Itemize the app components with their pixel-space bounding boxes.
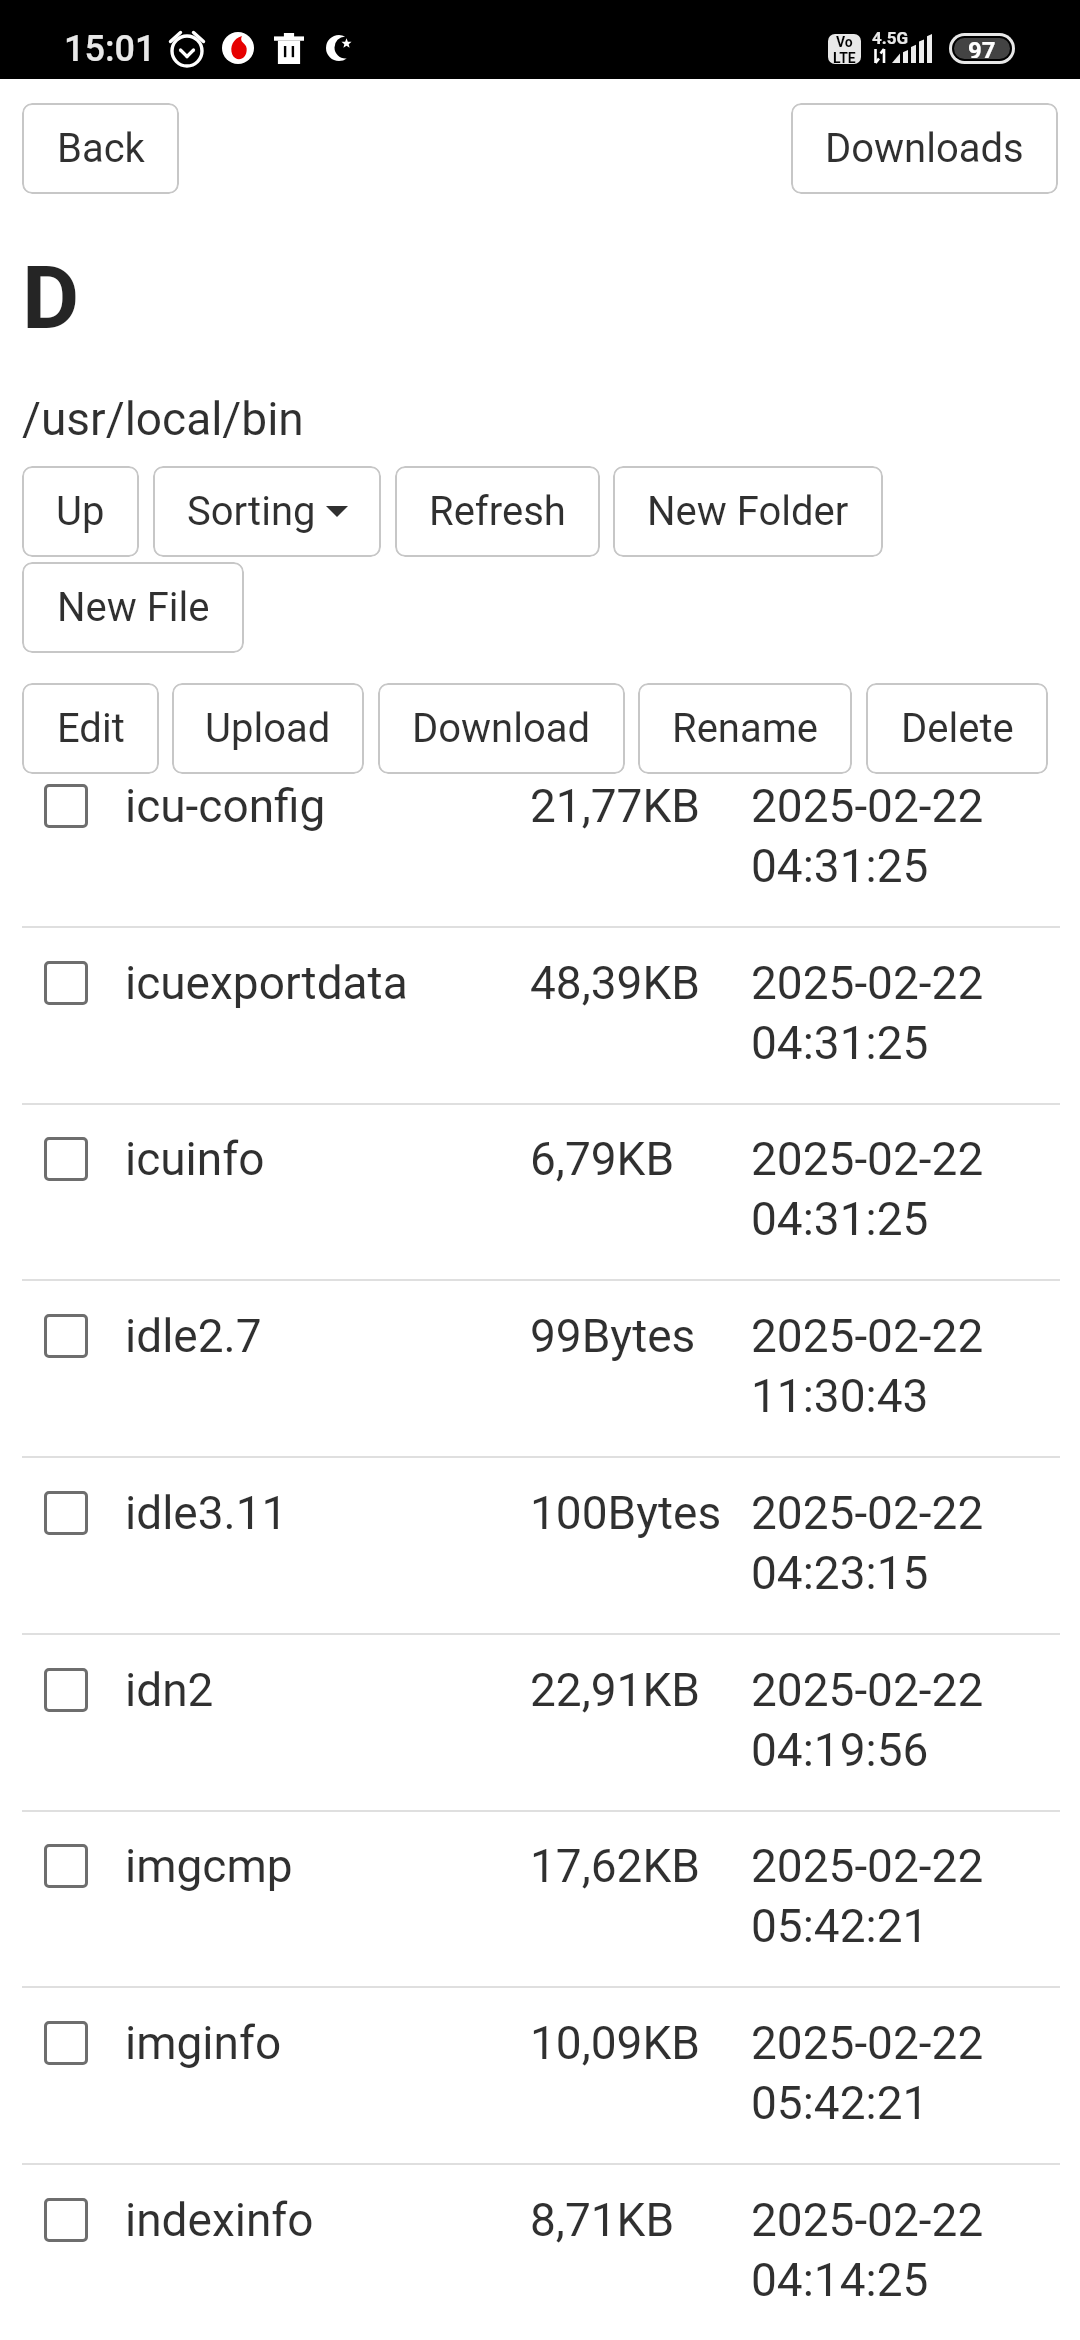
staticText: Download xyxy=(412,705,591,752)
staticText: 2025-02-22 04:31:25 xyxy=(751,779,984,893)
staticText: 21,77KB xyxy=(530,779,700,833)
staticText: New File xyxy=(57,584,210,631)
staticText: 48,39KB xyxy=(530,956,700,1010)
button[interactable]: New Folder xyxy=(613,466,883,557)
button[interactable]: Select idn2 xyxy=(44,1668,88,1712)
button[interactable]: Delete xyxy=(866,683,1048,774)
staticText: 99Bytes xyxy=(530,1309,696,1363)
button[interactable]: Select indexinfo xyxy=(0,2193,1080,2340)
button[interactable]: Back xyxy=(22,103,179,194)
staticText: 2025-02-22 04:31:25 xyxy=(751,1132,984,1246)
button[interactable]: Select icu-config xyxy=(44,784,88,828)
staticText: /usr/local/bin xyxy=(22,392,304,446)
staticText: 15:01 xyxy=(64,28,156,70)
button[interactable]: Select idle2.7 xyxy=(0,1309,1080,1486)
button[interactable]: Select icuexportdata xyxy=(0,956,1080,1133)
staticText: Downloads xyxy=(825,125,1024,172)
staticText: icuexportdata xyxy=(125,956,408,1010)
staticText: 2025-02-22 05:42:21 xyxy=(751,2016,984,2130)
staticText: 8,71KB xyxy=(530,2193,675,2247)
staticText: Rename xyxy=(672,705,818,752)
button[interactable]: Select icuinfo xyxy=(44,1137,88,1181)
staticText: 2025-02-22 04:31:25 xyxy=(751,956,984,1070)
staticText: Back xyxy=(57,125,145,172)
staticText: Upload xyxy=(205,705,331,752)
button[interactable]: Select icuinfo xyxy=(0,1132,1080,1309)
staticText: Refresh xyxy=(429,488,566,535)
button[interactable]: Select idle3.11 xyxy=(0,1486,1080,1663)
staticText: LTE xyxy=(833,50,856,64)
staticText: Edit xyxy=(57,705,125,752)
staticText: 97 xyxy=(968,38,996,58)
staticText: idn2 xyxy=(125,1663,214,1717)
staticText: Delete xyxy=(901,705,1014,752)
staticText: imgcmp xyxy=(125,1839,293,1893)
button[interactable]: Select icuexportdata xyxy=(44,961,88,1005)
staticText: 17,62KB xyxy=(530,1839,700,1893)
staticText: 2025-02-22 04:23:15 xyxy=(751,1486,984,1600)
staticText: imginfo xyxy=(125,2016,282,2070)
button[interactable]: Rename xyxy=(638,683,852,774)
staticText: 100Bytes xyxy=(530,1486,722,1540)
button[interactable]: Select imginfo xyxy=(44,2021,88,2065)
staticText: icuinfo xyxy=(125,1132,265,1186)
staticText: 6,79KB xyxy=(530,1132,675,1186)
button[interactable]: Select icu-config xyxy=(0,779,1080,956)
button[interactable]: Select idle3.11 xyxy=(44,1491,88,1535)
button[interactable]: Select idle2.7 xyxy=(44,1314,88,1358)
staticText: 22,91KB xyxy=(530,1663,700,1717)
staticText: idle2.7 xyxy=(125,1309,262,1363)
staticText: 10,09KB xyxy=(530,2016,700,2070)
staticText: Sorting xyxy=(187,488,316,535)
button[interactable]: Up xyxy=(22,466,139,557)
staticText: 4.5G xyxy=(872,28,909,48)
staticText: 2025-02-22 04:19:56 xyxy=(751,1663,984,1777)
button[interactable]: Select imgcmp xyxy=(44,1844,88,1888)
staticText: icu-config xyxy=(125,779,326,833)
staticText: Up xyxy=(56,488,105,535)
button[interactable]: Select imginfo xyxy=(0,2016,1080,2193)
button[interactable]: Edit xyxy=(22,683,159,774)
staticText: D xyxy=(22,246,80,349)
button[interactable]: New File xyxy=(22,562,244,653)
staticText: 2025-02-22 05:42:21 xyxy=(751,1839,984,1953)
button[interactable]: Sorting xyxy=(153,466,381,557)
button[interactable]: Select idn2 xyxy=(0,1663,1080,1840)
staticText: 2025-02-22 04:14:25 xyxy=(751,2193,984,2307)
staticText: New Folder xyxy=(647,488,849,535)
button[interactable]: Refresh xyxy=(395,466,600,557)
staticText: 2025-02-22 11:30:43 xyxy=(751,1309,984,1423)
staticText: Vo xyxy=(836,34,853,50)
button[interactable]: Downloads xyxy=(791,103,1058,194)
button[interactable]: Upload xyxy=(172,683,364,774)
staticText: indexinfo xyxy=(125,2193,314,2247)
button[interactable]: Select indexinfo xyxy=(44,2198,88,2242)
staticText: idle3.11 xyxy=(125,1486,288,1540)
button[interactable]: Select imgcmp xyxy=(0,1839,1080,2016)
button[interactable]: Download xyxy=(378,683,625,774)
